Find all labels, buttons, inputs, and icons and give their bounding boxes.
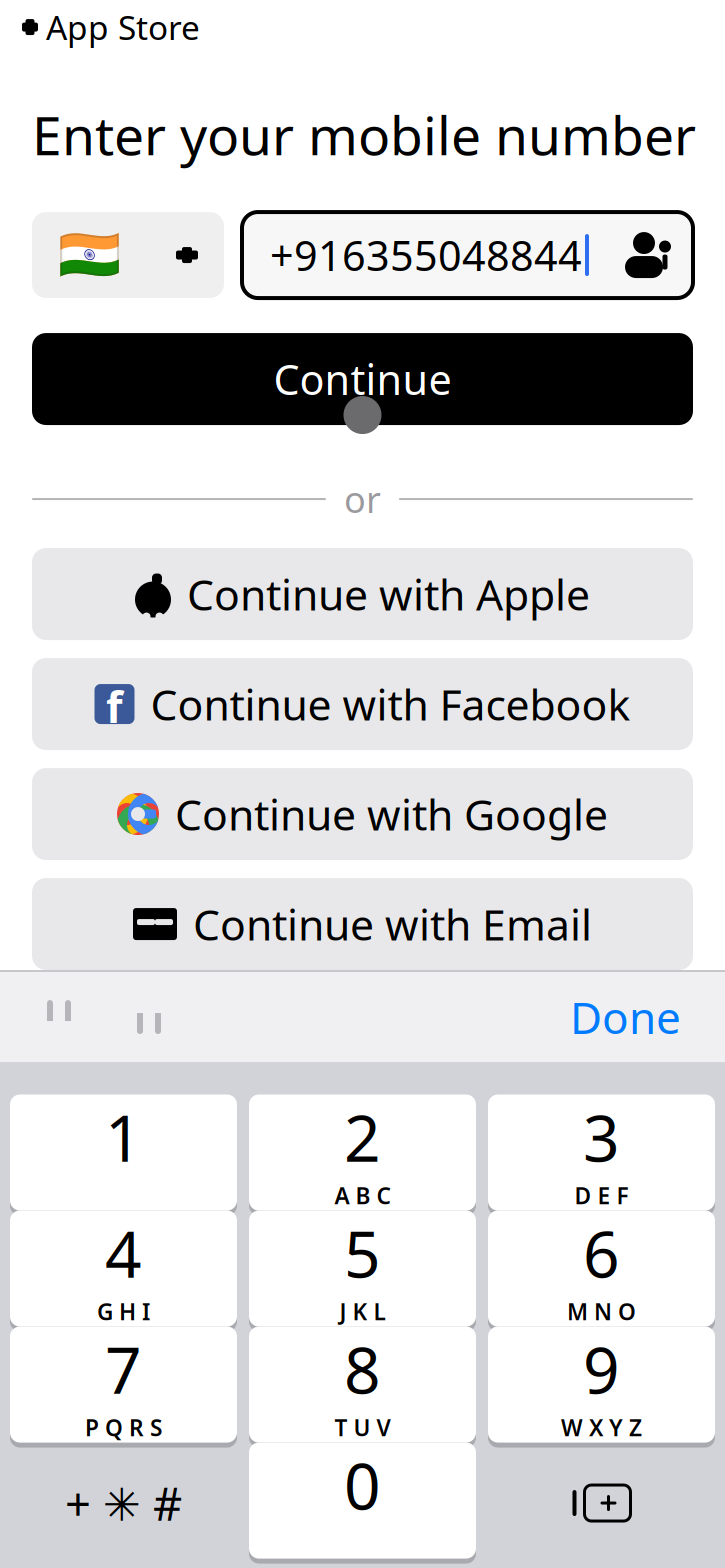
button[interactable]: Continue with Google [32,768,693,860]
staticText: Continue with Apple [187,566,590,622]
staticText: 0 [344,1442,381,1527]
button[interactable]: App Store [0,1,200,53]
staticText: G H I [97,1296,150,1327]
button[interactable]: 0 [249,1454,476,1552]
button[interactable]: f [32,658,693,750]
staticText: Continue with Email [193,896,592,952]
staticText: A B C [334,1180,390,1211]
staticText: M N O [567,1296,636,1327]
staticText: 9 [583,1326,620,1411]
button[interactable]: 2 [249,1106,476,1204]
staticText: 4 [105,1210,142,1295]
staticText: T U V [334,1412,390,1443]
button[interactable]: 8 [249,1338,476,1436]
staticText: W X Y Z [561,1412,642,1443]
staticText: P Q R S [85,1412,162,1443]
button[interactable]: Done [542,970,709,1064]
button[interactable]: Continue [32,333,693,425]
staticText: 3 [583,1094,620,1179]
staticText: 5 [344,1210,381,1295]
button[interactable]: 1 [10,1106,237,1204]
button[interactable]: +916355048844 [242,212,693,298]
button[interactable]: Previous field [16,978,102,1056]
button[interactable]: Next field [106,978,192,1056]
staticText: Continue [273,352,451,406]
button[interactable]: Continue with Email [32,878,693,970]
staticText: J K L [339,1296,385,1327]
staticText: 1 [105,1094,142,1179]
staticText: Continue with Google [175,786,608,842]
staticText: 7 [105,1326,142,1411]
staticText: f [106,678,123,735]
button[interactable]: 9 [488,1338,715,1436]
button[interactable]: 4 [10,1222,237,1320]
staticText: Done [570,988,681,1046]
button[interactable]: 6 [488,1222,715,1320]
staticText: 6 [583,1210,620,1295]
staticText: 🇮🇳 [58,226,121,284]
button[interactable]: Delete [488,1454,715,1552]
button[interactable]: 5 [249,1222,476,1320]
staticText: 8 [344,1326,381,1411]
staticText: D E F [574,1180,628,1211]
staticText: or [344,475,381,523]
staticText: +916355048844 [270,228,582,282]
staticText: 2 [344,1094,381,1179]
button[interactable]: Plus star hash [10,1454,237,1552]
staticText: Continue with Facebook [150,676,630,732]
button[interactable]: Continue with Apple [32,548,693,640]
button[interactable]: Select country code [32,212,224,298]
staticText: Enter your mobile number [32,99,696,170]
staticText: App Store [46,5,200,49]
staticText: + ✳ # [65,1473,182,1533]
button[interactable]: 7 [10,1338,237,1436]
button[interactable]: 3 [488,1106,715,1204]
